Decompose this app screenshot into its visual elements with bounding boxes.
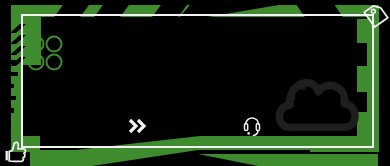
button[interactable]: Apps <box>28 34 62 72</box>
button[interactable]: Tag <box>362 0 390 28</box>
button[interactable]: Headset support <box>239 112 265 140</box>
button[interactable]: Like <box>0 138 28 166</box>
button[interactable]: Cloud <box>268 68 364 140</box>
button[interactable]: Fast forward <box>124 114 152 138</box>
